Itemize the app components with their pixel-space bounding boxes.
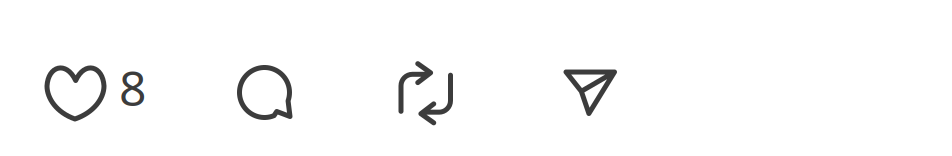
button[interactable]: Repost xyxy=(387,51,463,135)
button[interactable]: Like, 8 likes xyxy=(38,51,148,135)
staticText: 8 xyxy=(119,56,146,119)
button[interactable]: Share xyxy=(552,51,628,135)
button[interactable]: Reply xyxy=(227,51,303,135)
